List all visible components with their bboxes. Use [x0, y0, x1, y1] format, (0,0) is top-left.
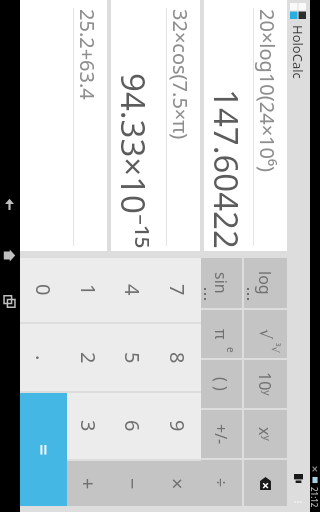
staticText: .: [30, 355, 57, 361]
staticText: sin: [210, 272, 232, 294]
button[interactable]: [244, 460, 287, 506]
button[interactable]: 8: [155, 324, 201, 391]
button[interactable]: .: [20, 324, 67, 391]
staticText: log: [254, 271, 276, 295]
staticText: 7: [164, 284, 191, 296]
staticText: 21:12: [310, 487, 320, 508]
staticText: −: [119, 478, 146, 490]
staticText: =: [30, 444, 57, 456]
button[interactable]: 2: [67, 324, 110, 391]
button[interactable]: √: [244, 310, 287, 358]
button[interactable]: 1: [67, 258, 110, 322]
staticText: ( ): [210, 377, 232, 391]
staticText: +: [75, 478, 102, 490]
button[interactable]: =: [20, 393, 67, 506]
staticText: 9: [164, 420, 191, 432]
button[interactable]: log: [244, 258, 287, 308]
staticText: 5: [119, 352, 146, 364]
button[interactable]: Back: [1, 195, 19, 213]
staticText: 10ʸ: [254, 372, 276, 396]
staticText: 3: [75, 420, 102, 432]
button[interactable]: 3: [67, 393, 110, 459]
button[interactable]: 10ʸ: [244, 360, 287, 408]
button[interactable]: ÷: [201, 460, 242, 506]
button[interactable]: ×: [155, 461, 201, 506]
button[interactable]: sin: [201, 258, 242, 308]
staticText: 147.60422: [204, 89, 249, 249]
button[interactable]: −: [110, 461, 155, 506]
staticText: +/-: [210, 424, 232, 445]
button[interactable]: π: [201, 310, 242, 358]
staticText: 2: [75, 352, 102, 364]
staticText: 25.2+63.4: [74, 9, 101, 100]
button[interactable]: 32×cos(7.5×π): [111, 0, 200, 251]
staticText: HoloCalc: [289, 25, 307, 79]
staticText: 1: [75, 284, 102, 296]
staticText: √: [256, 329, 275, 340]
button[interactable]: History: [287, 466, 310, 490]
staticText: ×: [164, 478, 191, 490]
button[interactable]: 7: [155, 258, 201, 322]
staticText: 6: [119, 420, 146, 432]
button[interactable]: Recents: [1, 292, 19, 310]
button[interactable]: +: [67, 461, 110, 506]
button[interactable]: 0: [20, 258, 67, 322]
button[interactable]: 25.2+63.4: [20, 0, 107, 251]
staticText: 8: [164, 352, 191, 364]
button[interactable]: 9: [155, 393, 201, 459]
staticText: 20×log10(24×10⁶): [254, 9, 281, 172]
staticText: xʸ: [254, 427, 276, 441]
staticText: 0: [30, 284, 57, 296]
button[interactable]: +/-: [201, 410, 242, 458]
button[interactable]: ( ): [201, 360, 242, 408]
staticText: 4: [119, 284, 146, 296]
staticText: π: [210, 329, 232, 340]
staticText: 32×cos(7.5×π): [167, 9, 194, 140]
button[interactable]: 4: [110, 258, 155, 322]
button[interactable]: 6: [110, 393, 155, 459]
staticText: ÷: [210, 478, 232, 488]
button[interactable]: 20×log10(24×10⁶): [204, 0, 287, 251]
staticText: e: [224, 347, 238, 353]
button[interactable]: xʸ: [244, 410, 287, 458]
staticText: ³√: [269, 343, 283, 353]
button[interactable]: Home: [1, 246, 19, 264]
button[interactable]: 5: [110, 324, 155, 391]
staticText: 94.33×10⁻¹⁵: [111, 73, 156, 249]
